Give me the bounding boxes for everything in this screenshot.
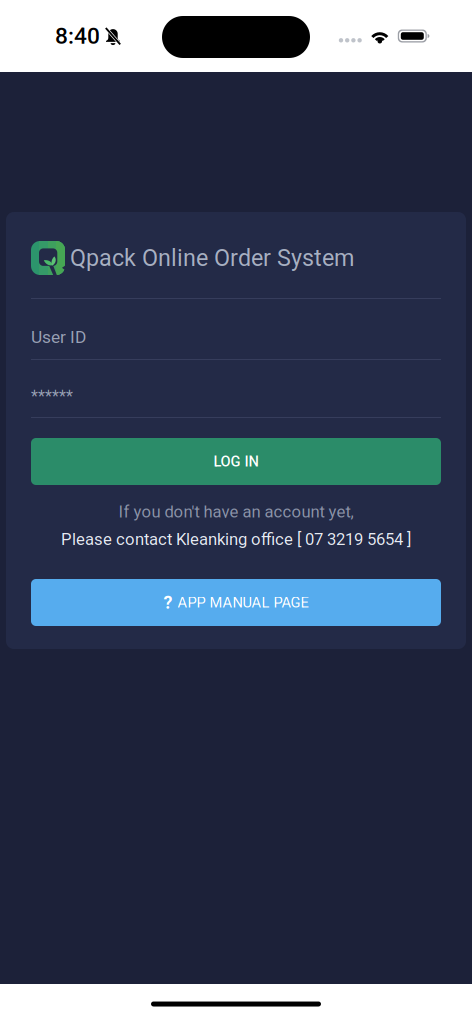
button[interactable]: LOG IN — [31, 438, 441, 485]
button[interactable]: ? — [31, 579, 441, 626]
staticText: ****** — [31, 387, 73, 406]
staticText: User ID — [31, 327, 86, 347]
staticText: If you don't have an account yet, — [118, 502, 353, 521]
staticText: APP MANUAL PAGE — [177, 594, 308, 611]
staticText: Qpack Online Order System — [70, 244, 354, 272]
staticText: ? — [163, 592, 172, 613]
staticText: LOG IN — [213, 453, 258, 470]
staticText: 8:40 — [55, 23, 100, 49]
staticText: Please contact Kleanking office [ 07 321… — [61, 529, 411, 549]
